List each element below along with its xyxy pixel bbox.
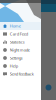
staticText: Send feedback <box>10 71 34 77</box>
button[interactable]: Night mode <box>0 46 41 54</box>
button[interactable]: Help <box>0 62 41 70</box>
staticText: Settings <box>10 55 23 61</box>
button[interactable]: Card Feed <box>0 30 41 38</box>
staticText: Statistics <box>10 39 25 45</box>
button[interactable]: Send feedback <box>0 70 41 78</box>
button[interactable]: Home <box>0 22 41 30</box>
button[interactable]: Settings <box>0 54 41 62</box>
staticText: Night mode <box>10 47 30 53</box>
staticText: Card Feed <box>10 31 28 37</box>
staticText: Help <box>10 63 18 69</box>
button[interactable]: Statistics <box>0 38 41 46</box>
staticText: Home <box>10 23 21 29</box>
